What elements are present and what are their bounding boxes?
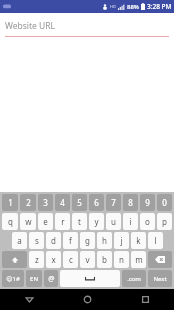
button[interactable]: b [97,251,112,268]
staticText: g [85,235,90,246]
button[interactable]: EN [26,270,42,287]
button[interactable]: 8 [123,194,138,211]
button[interactable]: p [157,213,172,230]
staticText: a [17,235,22,246]
button[interactable]: @ [44,270,58,287]
staticText: z [35,254,39,265]
staticText: r [61,216,65,227]
button[interactable]: 6 [89,194,104,211]
button[interactable]: h [97,232,112,249]
staticText: l [154,235,157,246]
button[interactable]: 5 [72,194,87,211]
staticText: v [85,254,90,265]
staticText: o [145,216,150,227]
staticText: 9 [145,197,150,208]
staticText: .com [127,275,141,283]
staticText: h [102,235,107,246]
staticText: y [94,216,99,227]
button[interactable]: c [63,251,78,268]
button[interactable]: Shift [2,251,27,268]
button[interactable]: m [131,251,146,268]
staticText: Website URL [5,20,56,32]
staticText: j [120,235,123,246]
button[interactable]: r [55,213,70,230]
button[interactable]: 7 [106,194,121,211]
staticText: d [51,235,56,246]
staticText: 2 [26,197,31,208]
staticText: HD [110,4,116,9]
button[interactable]: z [29,251,44,268]
button[interactable]: Home [58,289,116,310]
button[interactable]: y [89,213,104,230]
button[interactable]: Recents [116,289,174,310]
staticText: u [111,216,116,227]
staticText: ☺1# [6,275,20,283]
staticText: q [8,216,13,227]
button[interactable]: k [131,232,146,249]
button[interactable]: f [63,232,78,249]
staticText: t [78,216,81,227]
staticText: k [136,235,141,246]
button[interactable]: x [46,251,61,268]
button[interactable]: i [123,213,138,230]
button[interactable]: v [80,251,95,268]
button[interactable]: u [106,213,121,230]
staticText: 1 [8,197,13,208]
button[interactable]: Backspace [148,251,172,268]
button[interactable]: d [46,232,61,249]
button[interactable]: 2 [20,194,36,211]
staticText: p [162,216,167,227]
button[interactable]: Website URL [0,13,174,37]
staticText: i [129,216,132,227]
button[interactable]: 1 [2,194,18,211]
staticText: 0 [162,197,167,208]
button[interactable]: n [114,251,129,268]
button[interactable]: a [12,232,27,249]
staticText: c [69,254,73,265]
button[interactable]: 3 [38,194,53,211]
staticText: 6 [94,197,99,208]
button[interactable]: l [148,232,163,249]
button[interactable]: q [2,213,18,230]
staticText: n [119,254,124,265]
button[interactable]: 4 [55,194,70,211]
button[interactable]: e [38,213,53,230]
staticText: Next [153,275,167,283]
staticText: e [43,216,48,227]
button[interactable]: g [80,232,95,249]
button[interactable]: t [72,213,87,230]
staticText: @ [48,274,55,284]
button[interactable]: ☺1# [2,270,24,287]
button[interactable]: .com [122,270,146,287]
staticText: 3:28 PM [147,2,172,11]
staticText: x [51,254,56,265]
staticText: m [135,254,143,265]
button[interactable]: s [29,232,44,249]
staticText: 7 [111,197,116,208]
button[interactable]: j [114,232,129,249]
button[interactable]: 0 [157,194,172,211]
staticText: w [25,216,32,227]
button[interactable]: 9 [140,194,155,211]
button[interactable]: Space [60,270,120,287]
staticText: b [102,254,107,265]
button[interactable]: o [140,213,155,230]
staticText: 5 [77,197,82,208]
staticText: f [69,235,72,246]
button[interactable]: w [20,213,36,230]
staticText: 4 [60,197,65,208]
staticText: 8 [128,197,133,208]
staticText: 3 [43,197,48,208]
button[interactable]: Back [0,289,58,310]
button[interactable]: Next [148,270,172,287]
staticText: EN [30,275,38,283]
staticText: 88% [127,3,139,11]
staticText: s [35,235,39,246]
